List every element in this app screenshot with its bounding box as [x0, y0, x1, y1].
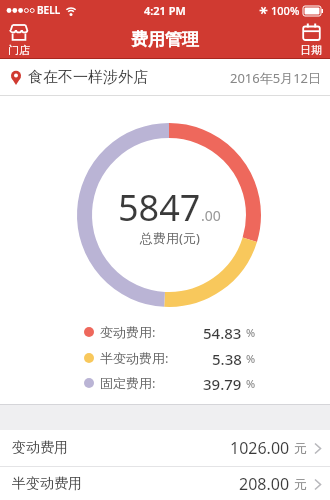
staticText: 固定费用: [100, 374, 190, 392]
staticText: .00 [201, 206, 221, 225]
button[interactable]: 日期 [300, 23, 322, 57]
staticText: BELL [37, 3, 61, 17]
staticText: 208.00 [239, 473, 290, 495]
staticText: 2016年5月12日 [230, 69, 322, 87]
button[interactable]: 食在不一样涉外店 [0, 59, 330, 96]
button[interactable]: 半变动费用: [84, 349, 256, 367]
staticText: 54.83 [203, 323, 242, 341]
staticText: 门店 [8, 43, 30, 57]
staticText: 4:21 PM [144, 3, 186, 18]
staticText: % [246, 351, 256, 366]
button[interactable]: 半变动费用 [0, 467, 330, 500]
staticText: % [246, 325, 256, 340]
staticText: 元 [294, 476, 307, 492]
staticText: 半变动费用 [12, 475, 82, 493]
staticText: 总费用(元) [140, 229, 200, 247]
staticText: 半变动费用: [100, 349, 190, 367]
staticText: 元 [294, 440, 307, 456]
staticText: 5847 [118, 183, 201, 232]
staticText: 日期 [300, 43, 322, 57]
staticText: 费用管理 [131, 29, 199, 50]
staticText: 变动费用 [12, 439, 68, 457]
staticText: 1026.00 [230, 437, 290, 459]
button[interactable]: 门店 [8, 23, 30, 57]
staticText: 39.79 [203, 374, 242, 392]
staticText: 食在不一样涉外店 [28, 68, 148, 87]
staticText: % [246, 376, 256, 391]
button[interactable]: 变动费用: [84, 323, 256, 341]
button[interactable]: 变动费用 [0, 430, 330, 466]
staticText: 变动费用: [100, 323, 190, 341]
button[interactable]: 固定费用: [84, 374, 256, 392]
staticText: 5.38 [212, 349, 242, 367]
staticText: 100% [271, 3, 300, 18]
